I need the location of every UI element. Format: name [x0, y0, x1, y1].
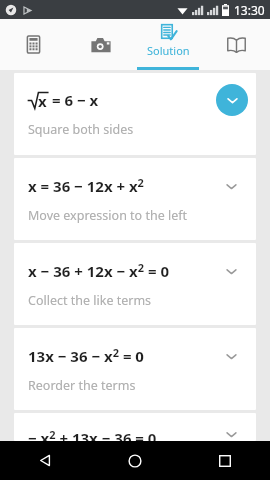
button[interactable]: Expand step [221, 176, 241, 196]
button[interactable]: 13x − 36 − x2 = 0 [14, 328, 256, 410]
staticText: Solution [147, 43, 190, 58]
button[interactable]: x [14, 73, 256, 155]
staticText: x [38, 91, 47, 111]
button[interactable]: Collapse step [216, 84, 248, 116]
button[interactable]: Back [0, 441, 90, 480]
button[interactable]: Solution [134, 19, 202, 70]
staticText: x = 36 − 12x + x2 [28, 175, 144, 196]
staticText: Reorder the terms [28, 377, 136, 394]
staticText: 13x − 36 − x2 = 0 [28, 345, 144, 366]
button[interactable]: Expand step [221, 261, 241, 281]
button[interactable]: x = 36 − 12x + x2 [14, 158, 256, 240]
staticText: 13:30 [234, 2, 265, 18]
button[interactable]: Home [90, 441, 180, 480]
button[interactable]: x − 36 + 12x − x2 = 0 [14, 243, 256, 325]
button[interactable]: Expand step [221, 428, 241, 441]
staticText: x − 36 + 12x − x2 = 0 [28, 260, 169, 281]
button[interactable]: − x2 + 13x − 36 = 0 [14, 413, 256, 441]
button[interactable]: Calculator [0, 19, 67, 70]
staticText: = 6 − x [52, 90, 99, 110]
staticText: − x2 + 13x − 36 = 0 [28, 427, 157, 441]
button[interactable]: Expand step [221, 346, 241, 366]
staticText: Collect the like terms [28, 292, 152, 309]
staticText: Square both sides [28, 121, 134, 138]
staticText: Move expression to the left [28, 207, 188, 224]
button[interactable]: Camera [67, 19, 134, 70]
button[interactable]: Recents [180, 441, 270, 480]
button[interactable]: Book [202, 19, 270, 70]
